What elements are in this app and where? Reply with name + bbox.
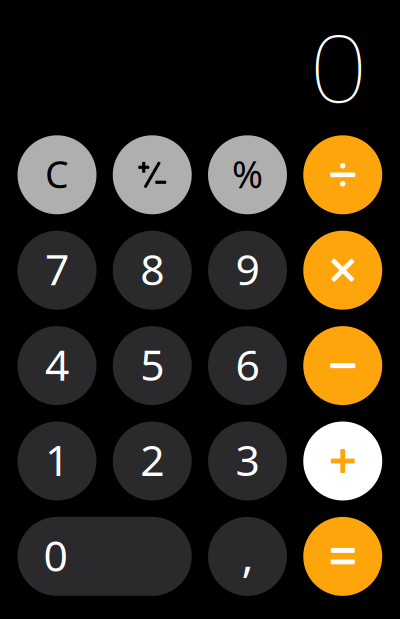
- staticText: ,: [241, 524, 253, 584]
- button[interactable]: 5: [113, 326, 192, 405]
- staticText: 3: [235, 431, 259, 488]
- button[interactable]: Subtract: [303, 326, 382, 405]
- staticText: 5: [140, 336, 164, 392]
- staticText: 4: [45, 336, 69, 392]
- button[interactable]: Add: [303, 421, 382, 500]
- staticText: %: [232, 149, 263, 199]
- button[interactable]: 1: [17, 421, 96, 500]
- button[interactable]: 8: [113, 231, 192, 310]
- button[interactable]: 4: [17, 326, 96, 405]
- button[interactable]: 9: [208, 231, 287, 310]
- button[interactable]: %: [208, 135, 287, 214]
- staticText: 9: [235, 240, 259, 297]
- staticText: 0: [43, 527, 67, 583]
- button[interactable]: 0: [17, 517, 192, 596]
- button[interactable]: Divide: [303, 135, 382, 214]
- staticText: 1: [45, 431, 69, 488]
- button[interactable]: Toggle sign: [113, 135, 192, 214]
- staticText: 8: [140, 240, 164, 297]
- button[interactable]: 6: [208, 326, 287, 405]
- button[interactable]: 3: [208, 421, 287, 500]
- button[interactable]: Equals: [303, 517, 382, 596]
- staticText: 6: [235, 336, 259, 392]
- staticText: C: [45, 149, 69, 199]
- button[interactable]: 2: [113, 421, 192, 500]
- button[interactable]: C: [17, 135, 96, 214]
- staticText: 7: [45, 240, 69, 297]
- staticText: 2: [140, 431, 164, 488]
- button[interactable]: 7: [17, 231, 96, 310]
- staticText: 0: [312, 4, 365, 128]
- button[interactable]: Multiply: [303, 231, 382, 310]
- button[interactable]: ,: [208, 517, 287, 596]
